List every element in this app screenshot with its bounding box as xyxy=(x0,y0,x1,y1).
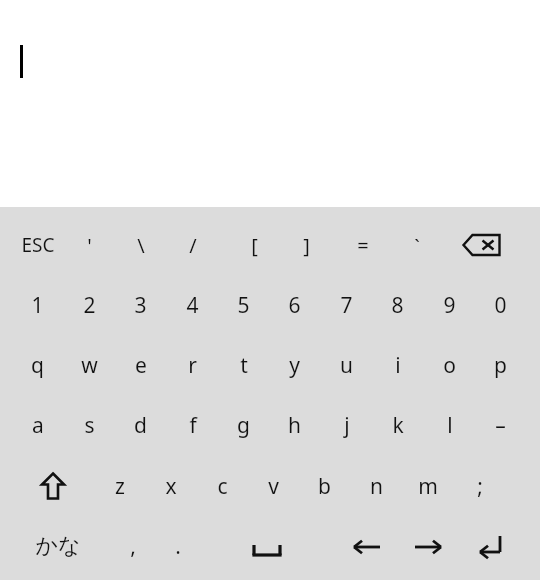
button[interactable]: p xyxy=(475,335,526,395)
button[interactable]: ' xyxy=(64,215,115,275)
staticText: 6 xyxy=(288,291,301,320)
button[interactable]: 4 xyxy=(167,275,218,335)
button[interactable]: e xyxy=(115,335,166,395)
button[interactable]: l xyxy=(424,395,475,455)
button[interactable]: 5 xyxy=(218,275,269,335)
staticText: n xyxy=(370,472,383,501)
staticText: ; xyxy=(477,472,483,501)
staticText: s xyxy=(84,411,95,440)
button[interactable]: b xyxy=(299,456,350,516)
staticText: w xyxy=(81,351,98,380)
staticText: [ xyxy=(251,232,258,259)
button[interactable]: i xyxy=(372,335,423,395)
button[interactable]: Enter xyxy=(465,524,515,570)
staticText: i xyxy=(395,351,401,380)
button[interactable]: 8 xyxy=(372,275,423,335)
staticText: \ xyxy=(137,232,145,259)
staticText: ' xyxy=(87,232,92,259)
button[interactable]: ] xyxy=(281,215,332,275)
staticText: , xyxy=(130,532,136,561)
button[interactable]: = xyxy=(337,215,388,275)
button[interactable]: かな xyxy=(23,516,93,576)
button[interactable]: 3 xyxy=(115,275,166,335)
button[interactable]: ; xyxy=(454,456,505,516)
button[interactable]: c xyxy=(197,456,248,516)
staticText: q xyxy=(31,351,44,380)
button[interactable]: , xyxy=(111,516,155,576)
button[interactable]: n xyxy=(351,456,402,516)
staticText: 7 xyxy=(340,291,353,320)
staticText: . xyxy=(175,532,181,561)
button[interactable]: s xyxy=(64,395,115,455)
staticText: 9 xyxy=(443,291,456,320)
button[interactable]: / xyxy=(167,215,218,275)
button[interactable]: q xyxy=(12,335,63,395)
button[interactable]: \ xyxy=(115,215,166,275)
button[interactable]: t xyxy=(218,335,269,395)
staticText: = xyxy=(357,232,369,259)
staticText: x xyxy=(165,472,177,501)
staticText: z xyxy=(115,472,125,501)
staticText: t xyxy=(240,351,248,380)
button[interactable]: Shift xyxy=(30,462,76,510)
staticText: o xyxy=(443,351,456,380)
button[interactable]: 7 xyxy=(321,275,372,335)
staticText: 8 xyxy=(391,291,404,320)
staticText: v xyxy=(268,472,279,501)
button[interactable]: Backspace xyxy=(462,223,510,267)
button[interactable]: y xyxy=(269,335,320,395)
staticText: ` xyxy=(414,233,420,260)
staticText: 0 xyxy=(494,291,507,320)
staticText: 4 xyxy=(186,291,199,320)
staticText: g xyxy=(237,411,250,440)
button[interactable]: o xyxy=(424,335,475,395)
staticText: f xyxy=(189,411,197,440)
button[interactable]: – xyxy=(475,395,526,455)
button[interactable]: 1 xyxy=(12,275,63,335)
button[interactable]: g xyxy=(218,395,269,455)
button[interactable]: r xyxy=(167,335,218,395)
button[interactable]: 2 xyxy=(64,275,115,335)
staticText: h xyxy=(288,411,301,440)
button[interactable]: f xyxy=(167,395,218,455)
staticText: y xyxy=(289,351,300,380)
staticText: l xyxy=(447,411,453,440)
button[interactable]: k xyxy=(372,395,423,455)
button[interactable]: . xyxy=(156,516,200,576)
button[interactable]: ` xyxy=(391,216,442,276)
staticText: d xyxy=(134,411,147,440)
staticText: ESC xyxy=(21,232,55,258)
button[interactable]: x xyxy=(145,456,196,516)
button[interactable]: Space xyxy=(207,526,327,574)
staticText: 3 xyxy=(134,291,147,320)
staticText: j xyxy=(344,411,350,440)
button[interactable]: a xyxy=(12,395,63,455)
button[interactable]: Cursor left xyxy=(342,524,392,570)
staticText: ] xyxy=(303,232,310,259)
button[interactable]: d xyxy=(115,395,166,455)
staticText: 5 xyxy=(237,291,250,320)
button[interactable]: Cursor right xyxy=(403,524,453,570)
button[interactable]: v xyxy=(248,456,299,516)
button[interactable]: j xyxy=(321,395,372,455)
staticText: – xyxy=(495,411,506,440)
button[interactable]: z xyxy=(94,456,145,516)
button[interactable]: ESC xyxy=(8,215,68,275)
button[interactable]: 9 xyxy=(424,275,475,335)
button[interactable]: 6 xyxy=(269,275,320,335)
staticText: m xyxy=(418,472,438,501)
staticText: u xyxy=(340,351,353,380)
staticText: p xyxy=(494,351,507,380)
staticText: / xyxy=(189,232,197,259)
staticText: e xyxy=(135,351,147,380)
button[interactable]: w xyxy=(64,335,115,395)
button[interactable]: u xyxy=(321,335,372,395)
staticText: c xyxy=(217,472,228,501)
staticText: かな xyxy=(35,532,81,560)
button[interactable]: h xyxy=(269,395,320,455)
button[interactable]: 0 xyxy=(475,275,526,335)
staticText: a xyxy=(32,411,44,440)
staticText: 2 xyxy=(83,291,96,320)
button[interactable]: m xyxy=(402,456,453,516)
button[interactable]: [ xyxy=(229,215,280,275)
